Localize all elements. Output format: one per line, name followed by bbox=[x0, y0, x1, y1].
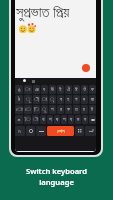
button[interactable]: য bbox=[68, 115, 74, 124]
staticText: ঐ bbox=[67, 87, 71, 92]
button[interactable]: ৈ bbox=[24, 115, 31, 124]
staticText: ৃ bbox=[50, 97, 55, 102]
staticText: ঠ bbox=[18, 97, 21, 102]
staticText: Switch keyboard language bbox=[0, 166, 113, 187]
staticText: ?১ bbox=[18, 129, 22, 134]
button[interactable]: Space bbox=[36, 126, 46, 136]
button[interactable]: Backspace bbox=[89, 115, 96, 124]
staticText: ঈ bbox=[75, 87, 78, 92]
staticText: ো bbox=[16, 107, 23, 112]
staticText: ক bbox=[67, 107, 70, 112]
staticText: ে bbox=[25, 107, 31, 112]
staticText: ত bbox=[75, 107, 78, 112]
button[interactable]: ঙ bbox=[15, 85, 23, 94]
staticText: া bbox=[42, 97, 47, 102]
staticText: স্পেস bbox=[57, 129, 65, 134]
staticText: ব bbox=[60, 97, 62, 102]
button[interactable]: থ bbox=[40, 115, 46, 124]
staticText: প bbox=[51, 107, 54, 112]
button[interactable]: ো bbox=[15, 105, 23, 114]
staticText: ং bbox=[25, 87, 31, 92]
staticText: দ bbox=[83, 97, 86, 102]
staticText: ধ bbox=[43, 87, 46, 92]
staticText: ঊ bbox=[51, 87, 54, 92]
staticText: ন bbox=[84, 117, 87, 122]
button[interactable]: হ bbox=[65, 95, 72, 104]
staticText: ঞ bbox=[35, 87, 39, 92]
staticText: স bbox=[63, 117, 66, 122]
button[interactable]: ি bbox=[33, 105, 40, 114]
button[interactable]: র bbox=[57, 105, 64, 114]
button[interactable]: গ bbox=[73, 95, 80, 104]
staticText: ু bbox=[42, 107, 47, 112]
button[interactable]: ষ bbox=[54, 115, 60, 124]
staticText: র bbox=[60, 107, 62, 112]
staticText: চ bbox=[83, 107, 86, 112]
staticText: য bbox=[70, 117, 73, 122]
staticText: ঙ bbox=[18, 87, 21, 92]
staticText: ৈ bbox=[25, 117, 31, 122]
staticText: ী bbox=[34, 97, 39, 102]
staticText: ম bbox=[77, 117, 80, 122]
button[interactable]: ট bbox=[89, 105, 96, 114]
button[interactable]: ঊ bbox=[49, 85, 56, 94]
staticText: ট bbox=[91, 107, 94, 112]
button[interactable]: ৗ bbox=[32, 115, 39, 124]
staticText: ঔ bbox=[83, 87, 87, 92]
staticText: হ bbox=[67, 97, 70, 102]
button[interactable]: জ bbox=[89, 95, 96, 104]
button[interactable]: ম bbox=[75, 115, 81, 124]
button[interactable]: Symbols bbox=[15, 126, 25, 136]
button[interactable]: New message bbox=[82, 64, 90, 72]
staticText: ষ bbox=[56, 117, 59, 122]
staticText: গ bbox=[75, 97, 78, 102]
staticText: ৗ bbox=[33, 117, 39, 122]
button[interactable]: ঐ bbox=[65, 85, 72, 94]
button[interactable]: ঞ bbox=[33, 85, 40, 94]
button[interactable]: া bbox=[41, 95, 48, 104]
button[interactable]: Enter bbox=[85, 126, 96, 136]
staticText: ফ bbox=[91, 87, 94, 92]
button[interactable]: ঈ bbox=[73, 85, 80, 94]
button[interactable]: ক bbox=[65, 105, 72, 114]
staticText: ি bbox=[34, 107, 39, 112]
button[interactable]: ঠ bbox=[15, 95, 23, 104]
staticText: থ bbox=[42, 117, 45, 122]
staticText: সুপ্রভাত প্রিয় bbox=[16, 1, 70, 21]
button[interactable]: শ bbox=[47, 115, 53, 124]
button[interactable]: ঔ bbox=[81, 85, 88, 94]
button[interactable]: ফ bbox=[89, 85, 96, 94]
button[interactable]: দ bbox=[81, 95, 88, 104]
button[interactable]: Keyboard layout bbox=[75, 126, 84, 136]
button[interactable]: স্পেস bbox=[47, 126, 74, 136]
button[interactable]: ূ bbox=[24, 95, 32, 104]
staticText: ূ bbox=[26, 97, 31, 102]
button[interactable]: ী bbox=[33, 95, 40, 104]
button[interactable]: স bbox=[61, 115, 67, 124]
button[interactable]: ধ bbox=[41, 85, 48, 94]
button[interactable]: ে bbox=[24, 105, 32, 114]
button[interactable]: ৃ bbox=[49, 95, 56, 104]
button[interactable]: প bbox=[49, 105, 56, 114]
button[interactable]: ু bbox=[41, 105, 48, 114]
button[interactable]: চ bbox=[81, 105, 88, 114]
button[interactable]: ং bbox=[24, 85, 32, 94]
staticText: ই bbox=[59, 87, 62, 92]
button[interactable]: ন bbox=[82, 115, 88, 124]
button[interactable] bbox=[15, 115, 23, 124]
button[interactable]: ত bbox=[73, 105, 80, 114]
staticText: জ bbox=[91, 97, 95, 102]
button[interactable]: ই bbox=[57, 85, 64, 94]
button[interactable]: Emoji bbox=[26, 126, 35, 136]
staticText: শ bbox=[49, 117, 52, 122]
button[interactable]: ব bbox=[57, 95, 64, 104]
